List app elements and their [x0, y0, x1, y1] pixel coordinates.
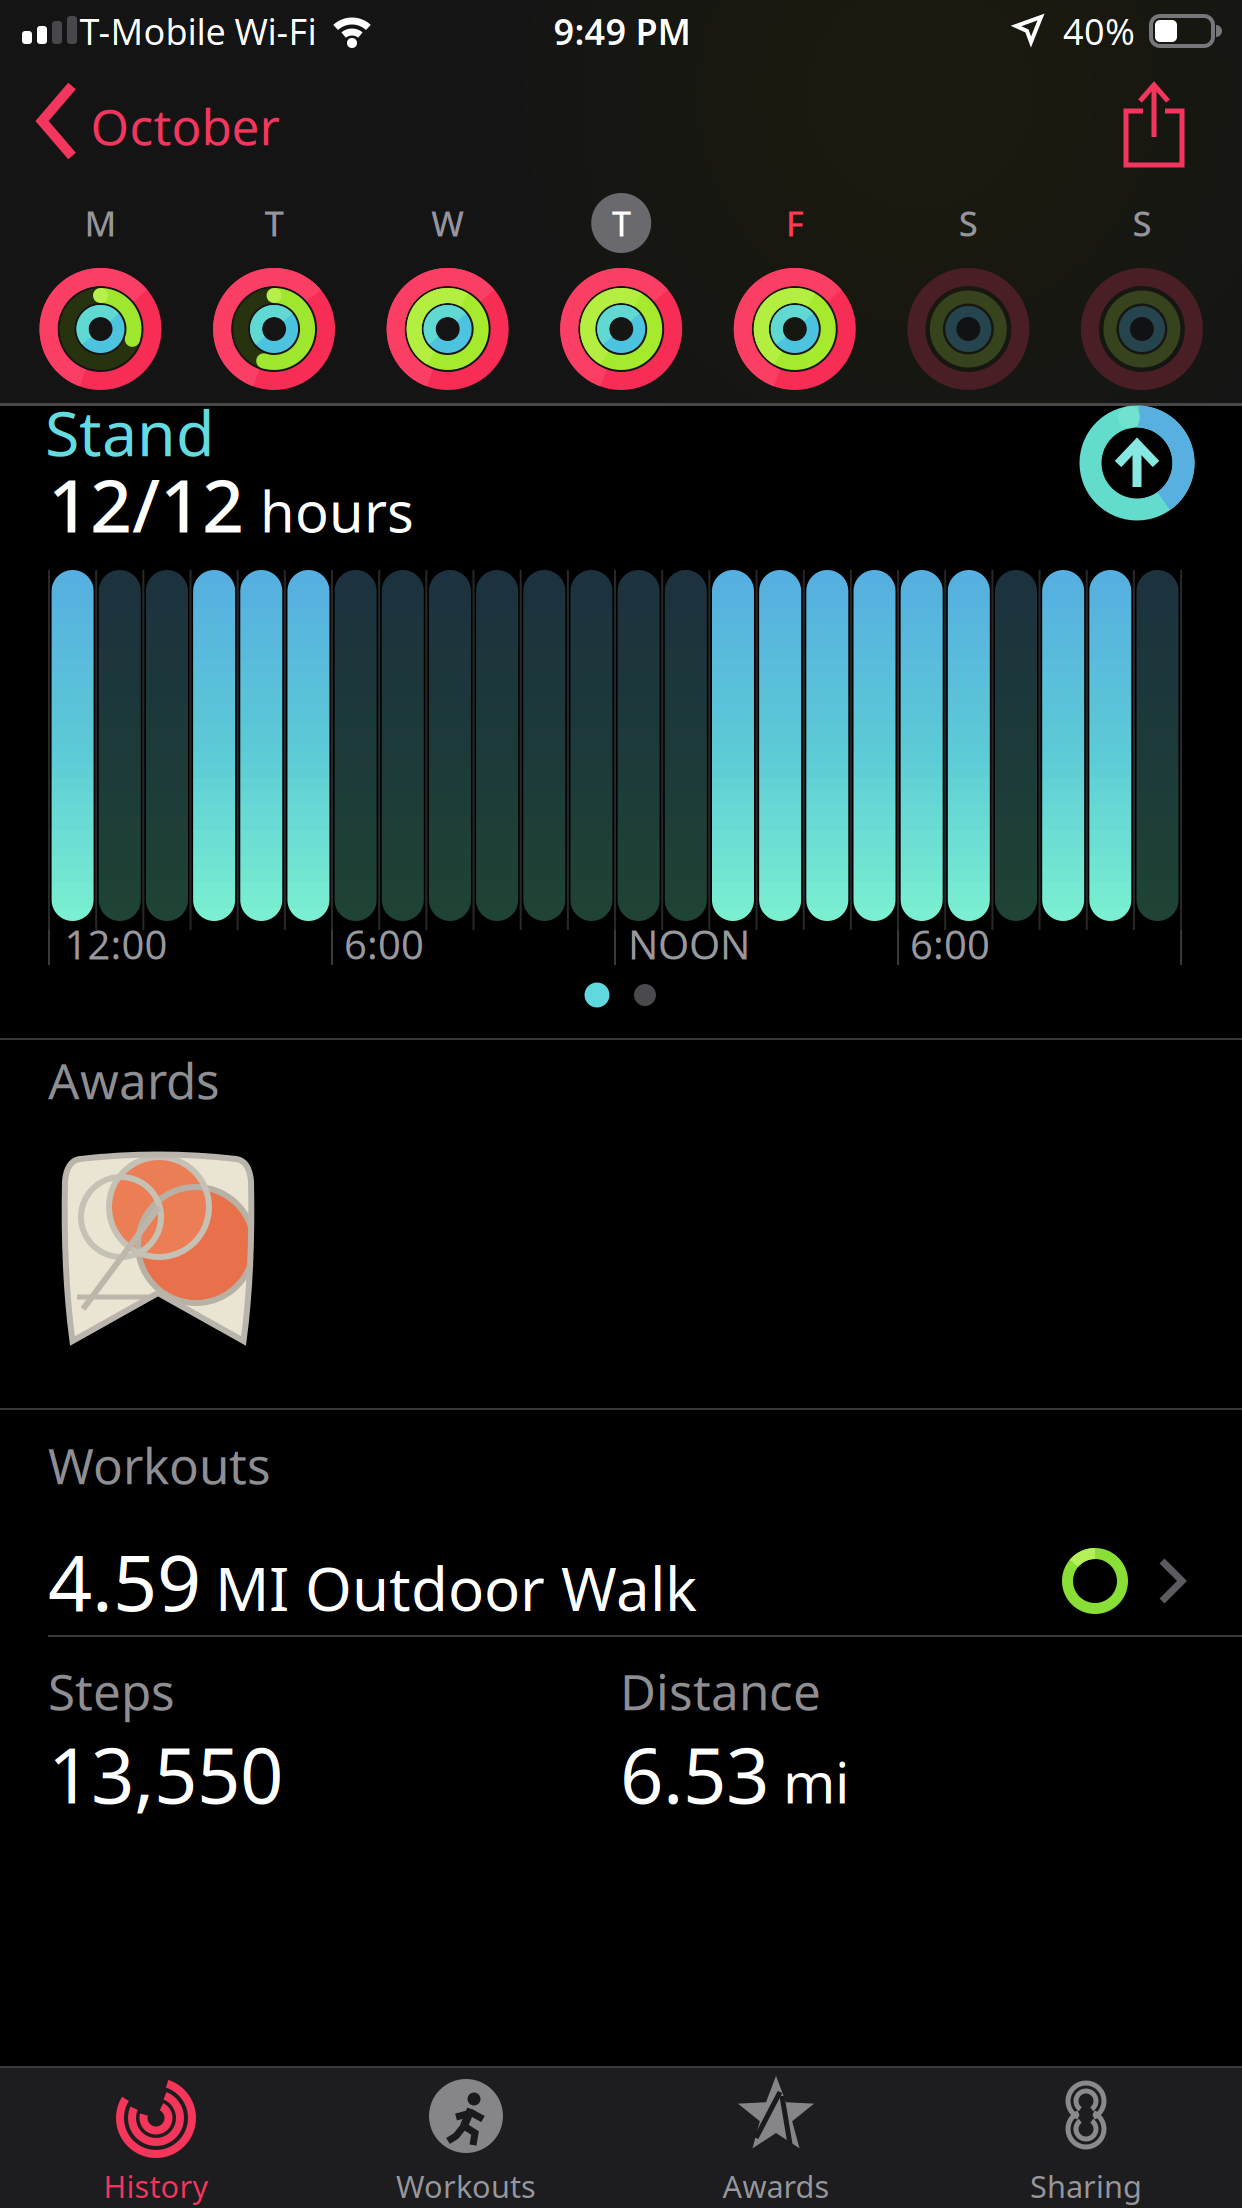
staticText: T: [612, 200, 631, 246]
staticText: 13,550: [48, 1723, 283, 1824]
staticText: Stand: [45, 390, 215, 474]
staticText: NOON: [628, 917, 750, 970]
button[interactable]: 4.59: [0, 1526, 1242, 1636]
staticText: History: [103, 2166, 208, 2206]
staticText: 6.53: [620, 1723, 769, 1824]
staticText: Sharing: [1030, 2166, 1142, 2206]
button[interactable]: History: [1, 2068, 311, 2208]
button[interactable]: Workouts: [311, 2068, 621, 2208]
button[interactable]: Day S: [1057, 192, 1227, 390]
button[interactable]: Sharing: [931, 2068, 1241, 2208]
staticText: S: [959, 200, 978, 246]
staticText: S: [1132, 200, 1151, 246]
staticText: M: [84, 200, 116, 246]
staticText: 9:49 PM: [553, 7, 690, 55]
staticText: Awards: [48, 1047, 220, 1113]
staticText: Steps: [48, 1658, 175, 1724]
staticText: 40%: [1063, 7, 1135, 55]
staticText: MI Outdoor Walk: [215, 1548, 697, 1628]
staticText: 4.59: [48, 1530, 201, 1632]
staticText: mi: [783, 1745, 849, 1819]
staticText: 12:00: [64, 917, 167, 970]
button[interactable]: Day S: [883, 192, 1053, 390]
staticText: T-Mobile Wi-Fi: [79, 7, 316, 55]
button[interactable]: Day T: [189, 192, 359, 390]
staticText: Workouts: [48, 1432, 271, 1498]
staticText: F: [786, 200, 804, 246]
staticText: 12/12: [48, 455, 244, 553]
button[interactable]: October award: [65, 1147, 251, 1347]
button[interactable]: Day M: [15, 192, 185, 390]
button[interactable]: Day F: [710, 192, 880, 390]
staticText: October: [90, 93, 279, 159]
staticText: W: [431, 200, 464, 246]
staticText: T: [265, 200, 284, 246]
button[interactable]: Stand goal reached: [1077, 403, 1197, 523]
staticText: 6:00: [910, 917, 990, 970]
staticText: Distance: [620, 1658, 821, 1724]
staticText: Awards: [722, 2166, 829, 2206]
staticText: hours: [260, 473, 414, 548]
staticText: Workouts: [396, 2166, 536, 2206]
button[interactable]: October: [0, 62, 300, 166]
button[interactable]: Awards: [621, 2068, 931, 2208]
button[interactable]: Share: [1123, 81, 1185, 169]
button[interactable]: Day W: [363, 192, 533, 390]
staticText: 6:00: [344, 917, 424, 970]
button[interactable]: Day T: [536, 192, 706, 390]
